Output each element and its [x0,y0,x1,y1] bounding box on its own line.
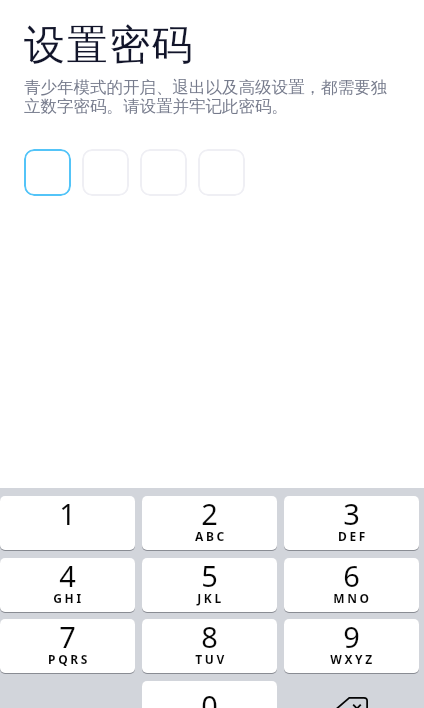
staticText: GHI [53,590,84,606]
staticText: 1 [59,496,76,533]
staticText: 4 [59,558,76,595]
staticText: 8 [201,619,218,656]
button[interactable]: Password digit 4 [198,149,245,196]
button[interactable]: 0 [142,681,277,708]
button[interactable]: Backspace [284,681,419,708]
staticText: 7 [59,619,76,656]
staticText: JKL [197,590,224,606]
staticText: 设置密码 [24,20,195,72]
staticText: 2 [201,496,218,533]
staticText: 6 [343,558,360,595]
staticText: DEF [338,528,368,544]
button[interactable]: 4 [0,558,135,612]
staticText: 9 [343,619,360,656]
staticText: PQRS [48,651,90,667]
staticText: 0 [201,686,218,708]
button[interactable]: 7 [0,619,135,673]
staticText: 5 [201,558,218,595]
staticText: 青少年模式的开启、退出以及高级设置，都需要独立数字密码。请设置并牢记此密码。 [24,77,398,117]
button[interactable]: 9 [284,619,419,673]
button[interactable]: Password digit 1 [24,149,71,196]
button[interactable]: Password digit 2 [82,149,129,196]
staticText: ABC [195,528,227,544]
button[interactable]: 8 [142,619,277,673]
staticText: TUV [195,651,227,667]
staticText: WXYZ [330,651,375,667]
button[interactable]: Password digit 3 [140,149,187,196]
staticText: MNO [333,590,372,606]
button[interactable]: 1 [0,496,135,550]
button[interactable]: 3 [284,496,419,550]
button[interactable]: 5 [142,558,277,612]
button[interactable]: 6 [284,558,419,612]
button[interactable]: 2 [142,496,277,550]
staticText: 3 [343,496,360,533]
